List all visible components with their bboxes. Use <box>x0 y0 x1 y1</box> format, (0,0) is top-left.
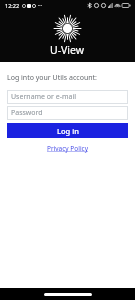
staticText: Password <box>11 108 43 118</box>
staticText: Username or e-mail <box>11 92 77 102</box>
staticText: ··· <box>38 2 43 9</box>
button[interactable]: Username or e-mail <box>7 90 128 104</box>
button[interactable]: Privacy Policy <box>43 143 93 154</box>
staticText: Log into your Utils account: <box>7 73 97 83</box>
staticText: U-View <box>50 43 85 57</box>
button[interactable]: Log in <box>7 123 128 138</box>
staticText: Privacy Policy <box>47 144 89 153</box>
staticText: Log in <box>57 126 79 136</box>
button[interactable]: Password <box>7 106 128 120</box>
staticText: 12:22 <box>5 2 20 9</box>
